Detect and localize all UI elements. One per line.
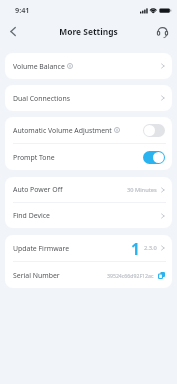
button[interactable]: Automatic Volume Adjustment — [5, 117, 172, 143]
button[interactable]: Prompt Tone — [143, 151, 165, 164]
button[interactable]: Dual Connections — [5, 85, 172, 111]
button[interactable]: Volume Balance — [5, 53, 172, 79]
staticText: 1 — [131, 238, 140, 259]
staticText: Automatic Volume Adjustment — [13, 126, 112, 135]
button[interactable]: Automatic Volume Adjustment — [143, 124, 165, 137]
staticText: Auto Power Off — [13, 185, 63, 194]
staticText: Update Firmware — [13, 244, 70, 253]
staticText: Volume Balance — [13, 62, 65, 71]
staticText: Dual Connections — [13, 94, 70, 103]
button[interactable]: Serial Number — [5, 262, 172, 288]
button[interactable]: Update Firmware — [5, 235, 172, 261]
button[interactable]: Auto Power Off — [5, 177, 172, 202]
staticText: Find Device — [13, 211, 50, 220]
button[interactable]: Headphones — [152, 22, 172, 42]
staticText: Serial Number — [13, 271, 60, 280]
staticText: 9:41 — [15, 5, 30, 15]
button[interactable]: Copy serial number — [158, 272, 165, 279]
staticText: 2.3.0 — [144, 244, 157, 252]
staticText: 30 Minutes — [127, 186, 157, 194]
button[interactable]: Back — [2, 21, 23, 42]
staticText: 39524c66d92F12ac — [107, 272, 154, 279]
button[interactable]: Prompt Tone — [5, 144, 172, 170]
staticText: More Settings — [59, 26, 118, 37]
button[interactable]: Find Device — [5, 203, 172, 228]
staticText: Prompt Tone — [13, 153, 55, 162]
